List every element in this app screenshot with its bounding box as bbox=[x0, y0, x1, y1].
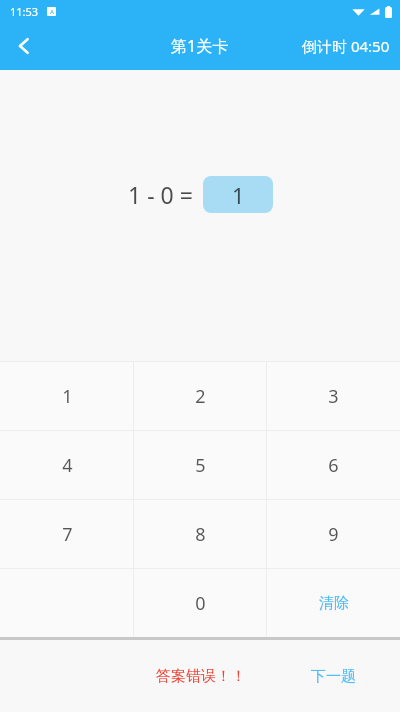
button[interactable]: 8 bbox=[134, 500, 267, 568]
staticText: A bbox=[50, 8, 54, 16]
staticText: 1 bbox=[62, 384, 73, 409]
staticText: 1 bbox=[232, 180, 245, 210]
staticText: 9 bbox=[328, 522, 339, 547]
button[interactable]: 1 bbox=[0, 362, 134, 430]
staticText: 2 bbox=[195, 384, 206, 409]
button[interactable]: 3 bbox=[267, 362, 400, 430]
staticText: 第1关卡 bbox=[171, 35, 229, 57]
button[interactable]: 答案错误！！ bbox=[134, 640, 267, 712]
staticText: 下一题 bbox=[311, 667, 356, 686]
button[interactable]: 5 bbox=[134, 431, 267, 499]
button[interactable]: 下一题 bbox=[267, 640, 400, 712]
staticText: 0 bbox=[195, 591, 206, 616]
button[interactable]: 6 bbox=[267, 431, 400, 499]
button[interactable]: 2 bbox=[134, 362, 267, 430]
button[interactable]: Back bbox=[0, 22, 48, 70]
staticText: 11:53 bbox=[10, 4, 39, 19]
staticText: 答案错误！！ bbox=[156, 667, 246, 686]
staticText: 5 bbox=[195, 453, 206, 478]
staticText: 8 bbox=[195, 522, 206, 547]
staticText: 倒计时 04:50 bbox=[302, 36, 390, 56]
button[interactable]: 1 bbox=[203, 176, 273, 213]
staticText: 清除 bbox=[319, 594, 349, 613]
staticText: 7 bbox=[62, 522, 73, 547]
button[interactable]: 4 bbox=[0, 431, 134, 499]
button[interactable]: 清除 bbox=[267, 569, 400, 637]
staticText: 6 bbox=[328, 453, 339, 478]
button[interactable]: 9 bbox=[267, 500, 400, 568]
staticText: 3 bbox=[328, 384, 339, 409]
button[interactable]: 0 bbox=[134, 569, 267, 637]
staticText: 4 bbox=[62, 453, 73, 478]
button[interactable]: 7 bbox=[0, 500, 134, 568]
staticText: 1 - 0 = bbox=[128, 179, 193, 210]
